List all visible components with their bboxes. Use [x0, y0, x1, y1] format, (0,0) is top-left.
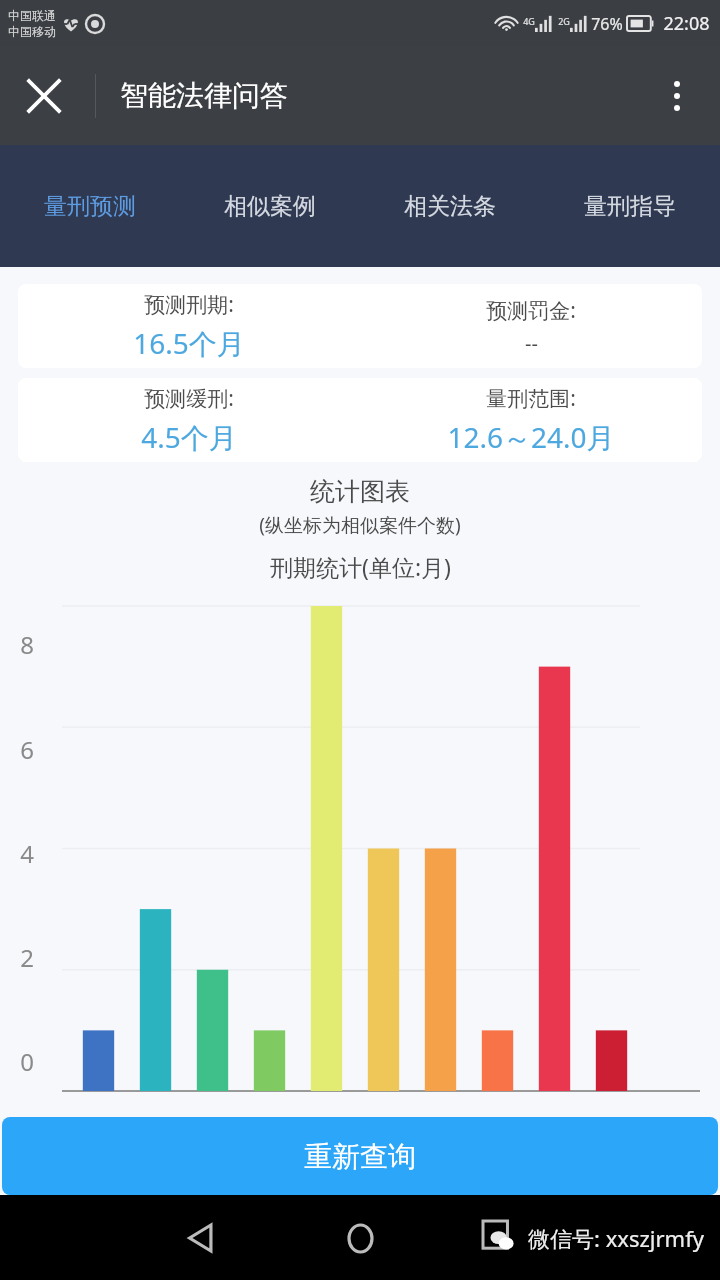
- staticText: (纵坐标为相似案件个数): [259, 512, 461, 538]
- staticText: --: [525, 330, 538, 357]
- staticText: 量刑预测: [44, 192, 136, 221]
- staticText: 8: [20, 628, 34, 661]
- button[interactable]: Home: [325, 1203, 395, 1273]
- staticText: 量刑范围:: [486, 384, 576, 413]
- button[interactable]: 预测刑期:: [18, 284, 702, 368]
- staticText: 4.5个月: [141, 418, 237, 456]
- button[interactable]: 预测缓刑:: [18, 378, 702, 462]
- staticText: 量刑指导: [584, 192, 676, 221]
- button[interactable]: 相似案例: [180, 145, 360, 267]
- staticText: 2G: [558, 15, 570, 27]
- staticText: 重新查询: [304, 1139, 416, 1174]
- staticText: 微信号: xxszjrmfy: [528, 1223, 704, 1253]
- staticText: 12.6～24.0月: [447, 418, 615, 456]
- staticText: 76%: [591, 13, 623, 35]
- staticText: 刑期统计(单位:月): [270, 551, 451, 582]
- button[interactable]: 相关法条: [360, 145, 540, 267]
- staticText: 2: [20, 941, 34, 974]
- staticText: 中国移动: [8, 24, 56, 39]
- staticText: 6: [20, 733, 34, 766]
- button[interactable]: 量刑预测: [0, 145, 180, 267]
- button[interactable]: Back: [165, 1203, 235, 1273]
- button[interactable]: More options: [646, 65, 708, 127]
- button[interactable]: Recents: [474, 1212, 526, 1264]
- staticText: 22:08: [663, 11, 710, 36]
- button[interactable]: 重新查询: [2, 1117, 718, 1195]
- staticText: 统计图表: [310, 476, 410, 507]
- staticText: 0: [20, 1045, 34, 1078]
- staticText: 中国联通: [8, 8, 56, 23]
- staticText: 预测缓刑:: [144, 384, 234, 413]
- staticText: 相关法条: [404, 192, 496, 221]
- staticText: 4: [20, 837, 34, 870]
- staticText: 相似案例: [224, 192, 316, 221]
- button[interactable]: Close: [12, 64, 76, 128]
- staticText: 16.5个月: [133, 324, 245, 362]
- staticText: 4G: [523, 15, 535, 27]
- staticText: 预测刑期:: [144, 290, 234, 319]
- staticText: 智能法律问答: [120, 78, 288, 113]
- button[interactable]: 量刑指导: [540, 145, 720, 267]
- staticText: 预测罚金:: [486, 296, 576, 325]
